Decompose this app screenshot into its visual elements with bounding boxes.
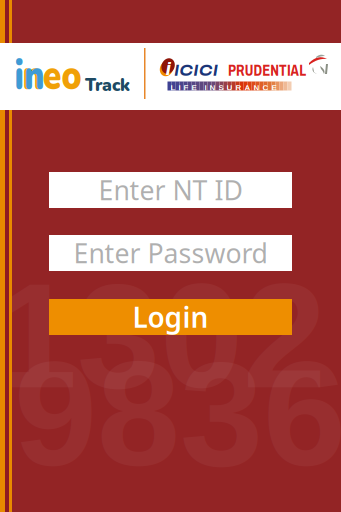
staticText: in [15, 47, 52, 104]
staticText: 9836 [14, 330, 341, 497]
staticText: 1302 [0, 252, 326, 419]
staticText: LIFE INSURANCE [170, 83, 276, 92]
staticText: Enter Password [73, 235, 267, 271]
staticText: Track [85, 73, 130, 97]
button[interactable]: Enter NT ID [49, 172, 292, 208]
staticText: i [165, 58, 170, 79]
staticText: Enter NT ID [98, 172, 242, 208]
staticText: ICICI [174, 61, 224, 79]
button[interactable]: Login [49, 299, 292, 335]
staticText: neo [23, 47, 96, 104]
staticText: PRUDENTIAL [228, 61, 317, 79]
staticText: Login [132, 298, 208, 336]
button[interactable]: Enter Password [49, 235, 292, 271]
